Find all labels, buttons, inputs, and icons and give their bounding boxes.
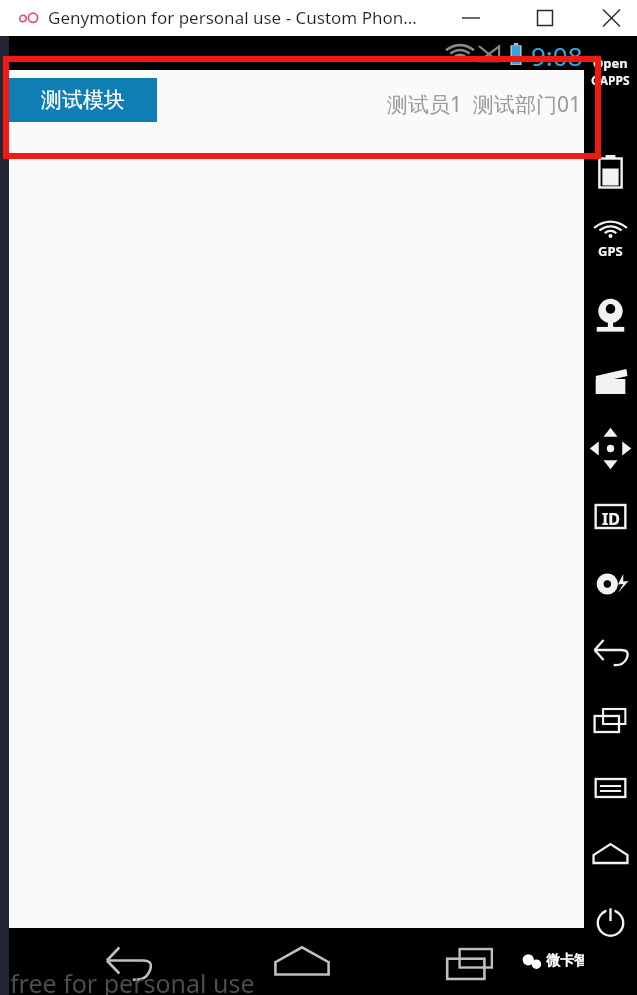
button[interactable]: Open GAPPS <box>584 54 637 98</box>
button[interactable]: Battery <box>584 146 637 196</box>
staticText: 微卡智享 <box>546 952 602 970</box>
staticText: GPS <box>598 242 623 260</box>
button[interactable]: Home <box>267 942 337 986</box>
button[interactable]: Minimize <box>440 0 502 36</box>
button[interactable]: Record video <box>584 358 637 408</box>
staticText: ID <box>602 508 620 530</box>
button[interactable]: Recents <box>441 942 503 986</box>
button[interactable]: Identifiers <box>584 494 637 544</box>
button[interactable]: GPS <box>584 216 637 266</box>
button[interactable]: Power <box>584 902 637 952</box>
staticText: Open <box>593 54 628 72</box>
button[interactable]: D-pad <box>584 426 637 476</box>
button[interactable]: Close <box>586 0 637 36</box>
staticText: 9:08 <box>531 38 583 72</box>
button[interactable]: Home <box>584 834 637 884</box>
staticText: free for personal use <box>10 966 255 995</box>
button[interactable]: Disk IO <box>584 562 637 612</box>
button[interactable]: Maximize <box>514 0 576 36</box>
staticText: 测试模块 <box>41 87 125 113</box>
staticText: GAPPS <box>591 72 630 88</box>
button[interactable]: Back <box>97 942 159 986</box>
staticText: Genymotion for personal use - Custom Pho… <box>48 6 417 29</box>
button[interactable]: Recents <box>584 698 637 748</box>
button[interactable]: Back <box>584 630 637 680</box>
button[interactable]: Camera <box>584 290 637 340</box>
button[interactable]: 测试模块 <box>9 78 157 122</box>
staticText: 测试员1 测试部门01 <box>387 90 581 119</box>
button[interactable]: Menu <box>584 766 637 816</box>
